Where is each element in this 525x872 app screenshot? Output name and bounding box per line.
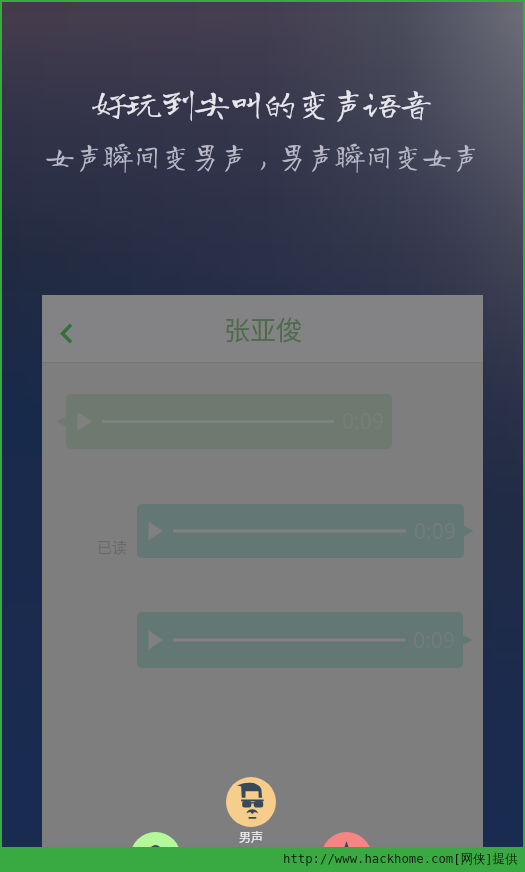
button[interactable]: 0:09 <box>137 612 463 668</box>
button[interactable]: 0:09 <box>137 504 464 558</box>
staticText: 男声 <box>239 828 264 843</box>
staticText: 女声瞬间变男声，男声瞬间变女声 <box>45 141 481 170</box>
staticText: 已读 <box>97 536 128 556</box>
button[interactable]: 0:09 <box>66 394 392 449</box>
button[interactable]: Back <box>44 303 96 355</box>
button[interactable]: Male voice <box>226 777 276 827</box>
button[interactable]: Child voice <box>321 832 372 872</box>
staticText: 0:09 <box>413 626 455 655</box>
staticText: 0:09 <box>342 407 384 436</box>
staticText: 好玩到尖叫的变声语音 <box>93 86 433 120</box>
staticText: http://www.hackhome.com[网侠]提供 <box>283 851 518 866</box>
staticText: 张亚俊 <box>224 310 303 348</box>
staticText: 0:09 <box>414 517 456 546</box>
button[interactable]: Female voice <box>130 832 181 872</box>
